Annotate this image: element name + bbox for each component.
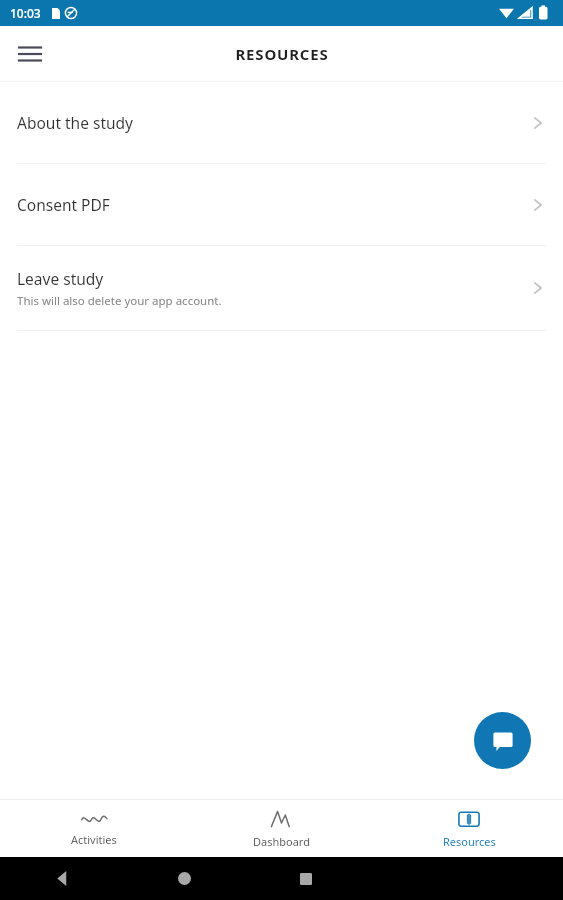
- staticText: Dashboard: [253, 834, 310, 849]
- staticText: Resources: [443, 834, 496, 849]
- button[interactable]: Recent apps: [282, 857, 330, 900]
- button[interactable]: Leave study: [0, 246, 563, 330]
- staticText: Leave study: [17, 268, 104, 289]
- button[interactable]: Resources: [375, 800, 563, 857]
- button[interactable]: Dashboard: [187, 800, 375, 857]
- button[interactable]: Consent PDF: [0, 164, 563, 245]
- staticText: Consent PDF: [17, 194, 110, 215]
- button[interactable]: Back: [38, 857, 86, 900]
- button[interactable]: Chat support: [474, 712, 531, 769]
- staticText: This will also delete your app account.: [17, 293, 222, 309]
- button[interactable]: Home: [160, 857, 208, 900]
- button[interactable]: About the study: [0, 82, 563, 163]
- staticText: 10:03: [10, 5, 41, 21]
- button[interactable]: Open navigation menu: [6, 30, 54, 78]
- staticText: About the study: [17, 112, 134, 133]
- staticText: RESOURCES: [235, 44, 329, 64]
- button[interactable]: Activities: [0, 800, 187, 857]
- staticText: Activities: [71, 832, 117, 847]
